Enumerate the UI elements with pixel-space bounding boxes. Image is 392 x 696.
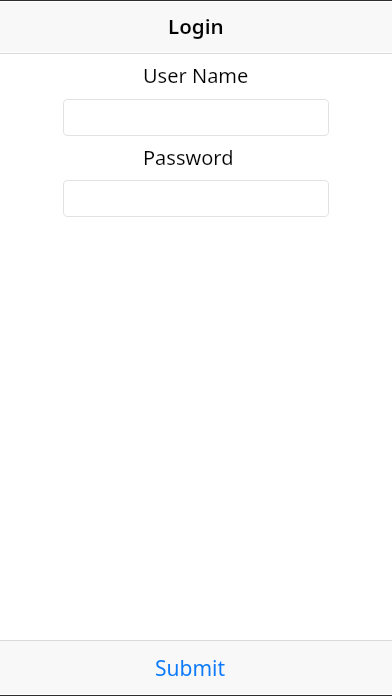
staticText: Login xyxy=(168,12,224,40)
button[interactable]: User Name field xyxy=(63,99,329,136)
button[interactable]: Password field xyxy=(63,180,329,217)
staticText: User Name xyxy=(143,62,249,89)
staticText: Password xyxy=(143,144,234,171)
button[interactable]: Submit xyxy=(133,645,248,693)
staticText: Submit xyxy=(155,654,226,683)
